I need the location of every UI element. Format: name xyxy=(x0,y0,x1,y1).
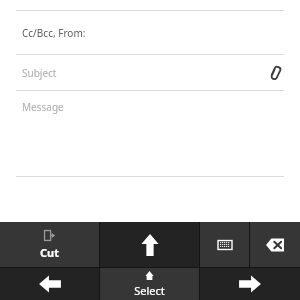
staticText: Cut xyxy=(40,245,59,260)
button[interactable]: Cc/Bcc, From: xyxy=(0,11,300,54)
staticText: Subject xyxy=(22,66,57,80)
staticText: Select xyxy=(134,283,165,298)
staticText: Cc/Bcc, From: xyxy=(22,26,86,40)
staticText: Message xyxy=(22,100,64,114)
button[interactable]: Move right xyxy=(200,268,300,300)
button[interactable]: Message xyxy=(0,91,300,176)
button[interactable]: Show keyboard xyxy=(200,222,249,267)
button[interactable]: Move left xyxy=(0,268,99,300)
button[interactable]: Backspace xyxy=(250,222,300,267)
button[interactable]: Move up xyxy=(100,222,199,267)
button[interactable]: Attach file xyxy=(264,61,288,85)
button[interactable]: Select xyxy=(100,268,199,300)
button[interactable]: Cut xyxy=(0,222,99,267)
button[interactable]: Subject xyxy=(0,55,300,90)
